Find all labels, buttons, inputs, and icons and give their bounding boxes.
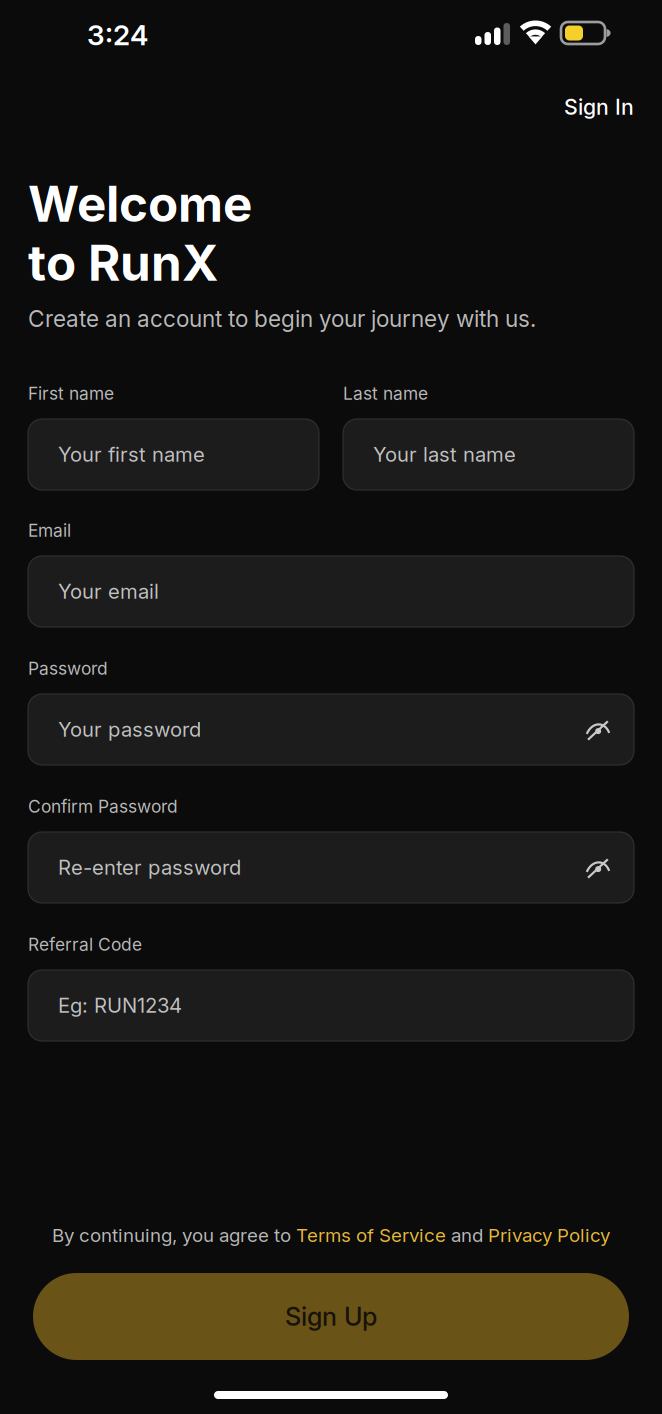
button[interactable]: Your first name xyxy=(28,419,319,490)
button[interactable]: Privacy Policy xyxy=(488,1224,610,1247)
staticText: Confirm Password xyxy=(28,796,178,817)
staticText: Sign In xyxy=(564,94,634,120)
staticText: Your email xyxy=(58,579,159,604)
staticText: Eg: RUN1234 xyxy=(58,993,182,1018)
button[interactable]: Your email xyxy=(28,556,634,627)
staticText: and xyxy=(446,1224,488,1247)
staticText: Your first name xyxy=(58,442,205,467)
button[interactable]: Show password xyxy=(570,702,626,758)
staticText: Password xyxy=(28,658,108,679)
staticText: Sign Up xyxy=(285,1301,377,1332)
staticText: to RunX xyxy=(28,233,218,293)
staticText: Re-enter password xyxy=(58,855,241,880)
button[interactable]: Your last name xyxy=(343,419,634,490)
staticText: First name xyxy=(28,383,114,404)
staticText: By continuing, you agree to xyxy=(52,1224,296,1247)
button[interactable]: Terms of Service xyxy=(296,1224,446,1247)
button[interactable]: Re-enter password xyxy=(28,832,634,903)
button[interactable]: Your password xyxy=(28,694,634,765)
button[interactable]: Eg: RUN1234 xyxy=(28,970,634,1041)
staticText: Last name xyxy=(343,383,428,404)
button[interactable]: Sign In xyxy=(534,90,634,124)
staticText: Your last name xyxy=(373,442,516,467)
staticText: 3:24 xyxy=(87,18,148,52)
staticText: Create an account to begin your journey … xyxy=(28,305,536,332)
staticText: Email xyxy=(28,520,71,541)
button[interactable]: Sign Up xyxy=(33,1273,629,1360)
staticText: Your password xyxy=(58,717,201,742)
staticText: Terms of Service xyxy=(296,1224,446,1247)
staticText: Privacy Policy xyxy=(488,1224,610,1247)
staticText: Referral Code xyxy=(28,934,142,955)
staticText: Welcome xyxy=(28,174,252,234)
button[interactable]: Show password xyxy=(570,840,626,896)
